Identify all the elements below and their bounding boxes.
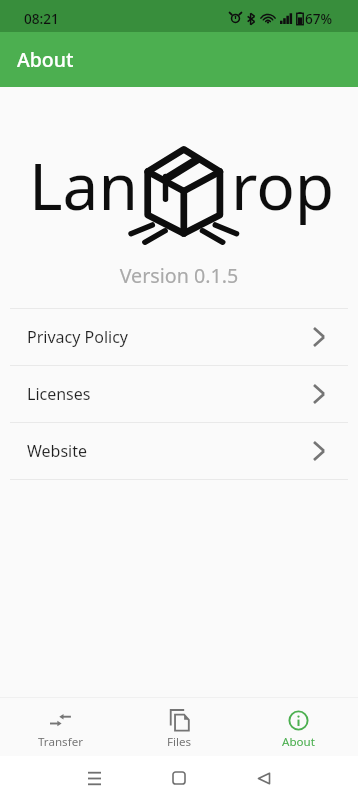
button[interactable]: Licenses — [0, 366, 358, 422]
button[interactable]: About — [239, 698, 358, 756]
staticText: Files — [167, 734, 192, 750]
staticText: Lan — [29, 142, 138, 229]
staticText: rop — [231, 142, 335, 229]
button[interactable]: Privacy Policy — [0, 309, 358, 365]
button[interactable]: Home — [157, 756, 201, 800]
button[interactable]: Back — [242, 756, 286, 800]
staticText: 08:21 — [24, 9, 59, 28]
staticText: Website — [27, 440, 88, 462]
button[interactable]: Recent apps — [72, 756, 116, 800]
staticText: Version 0.1.5 — [0, 262, 358, 289]
staticText: Licenses — [27, 383, 91, 405]
staticText: 67% — [305, 9, 333, 28]
staticText: Privacy Policy — [27, 326, 128, 348]
button[interactable]: Files — [120, 698, 239, 756]
button[interactable]: Transfer — [0, 698, 120, 756]
staticText: About — [17, 46, 74, 73]
staticText: About — [282, 734, 315, 750]
staticText: Transfer — [38, 734, 83, 750]
button[interactable]: Website — [0, 423, 358, 479]
